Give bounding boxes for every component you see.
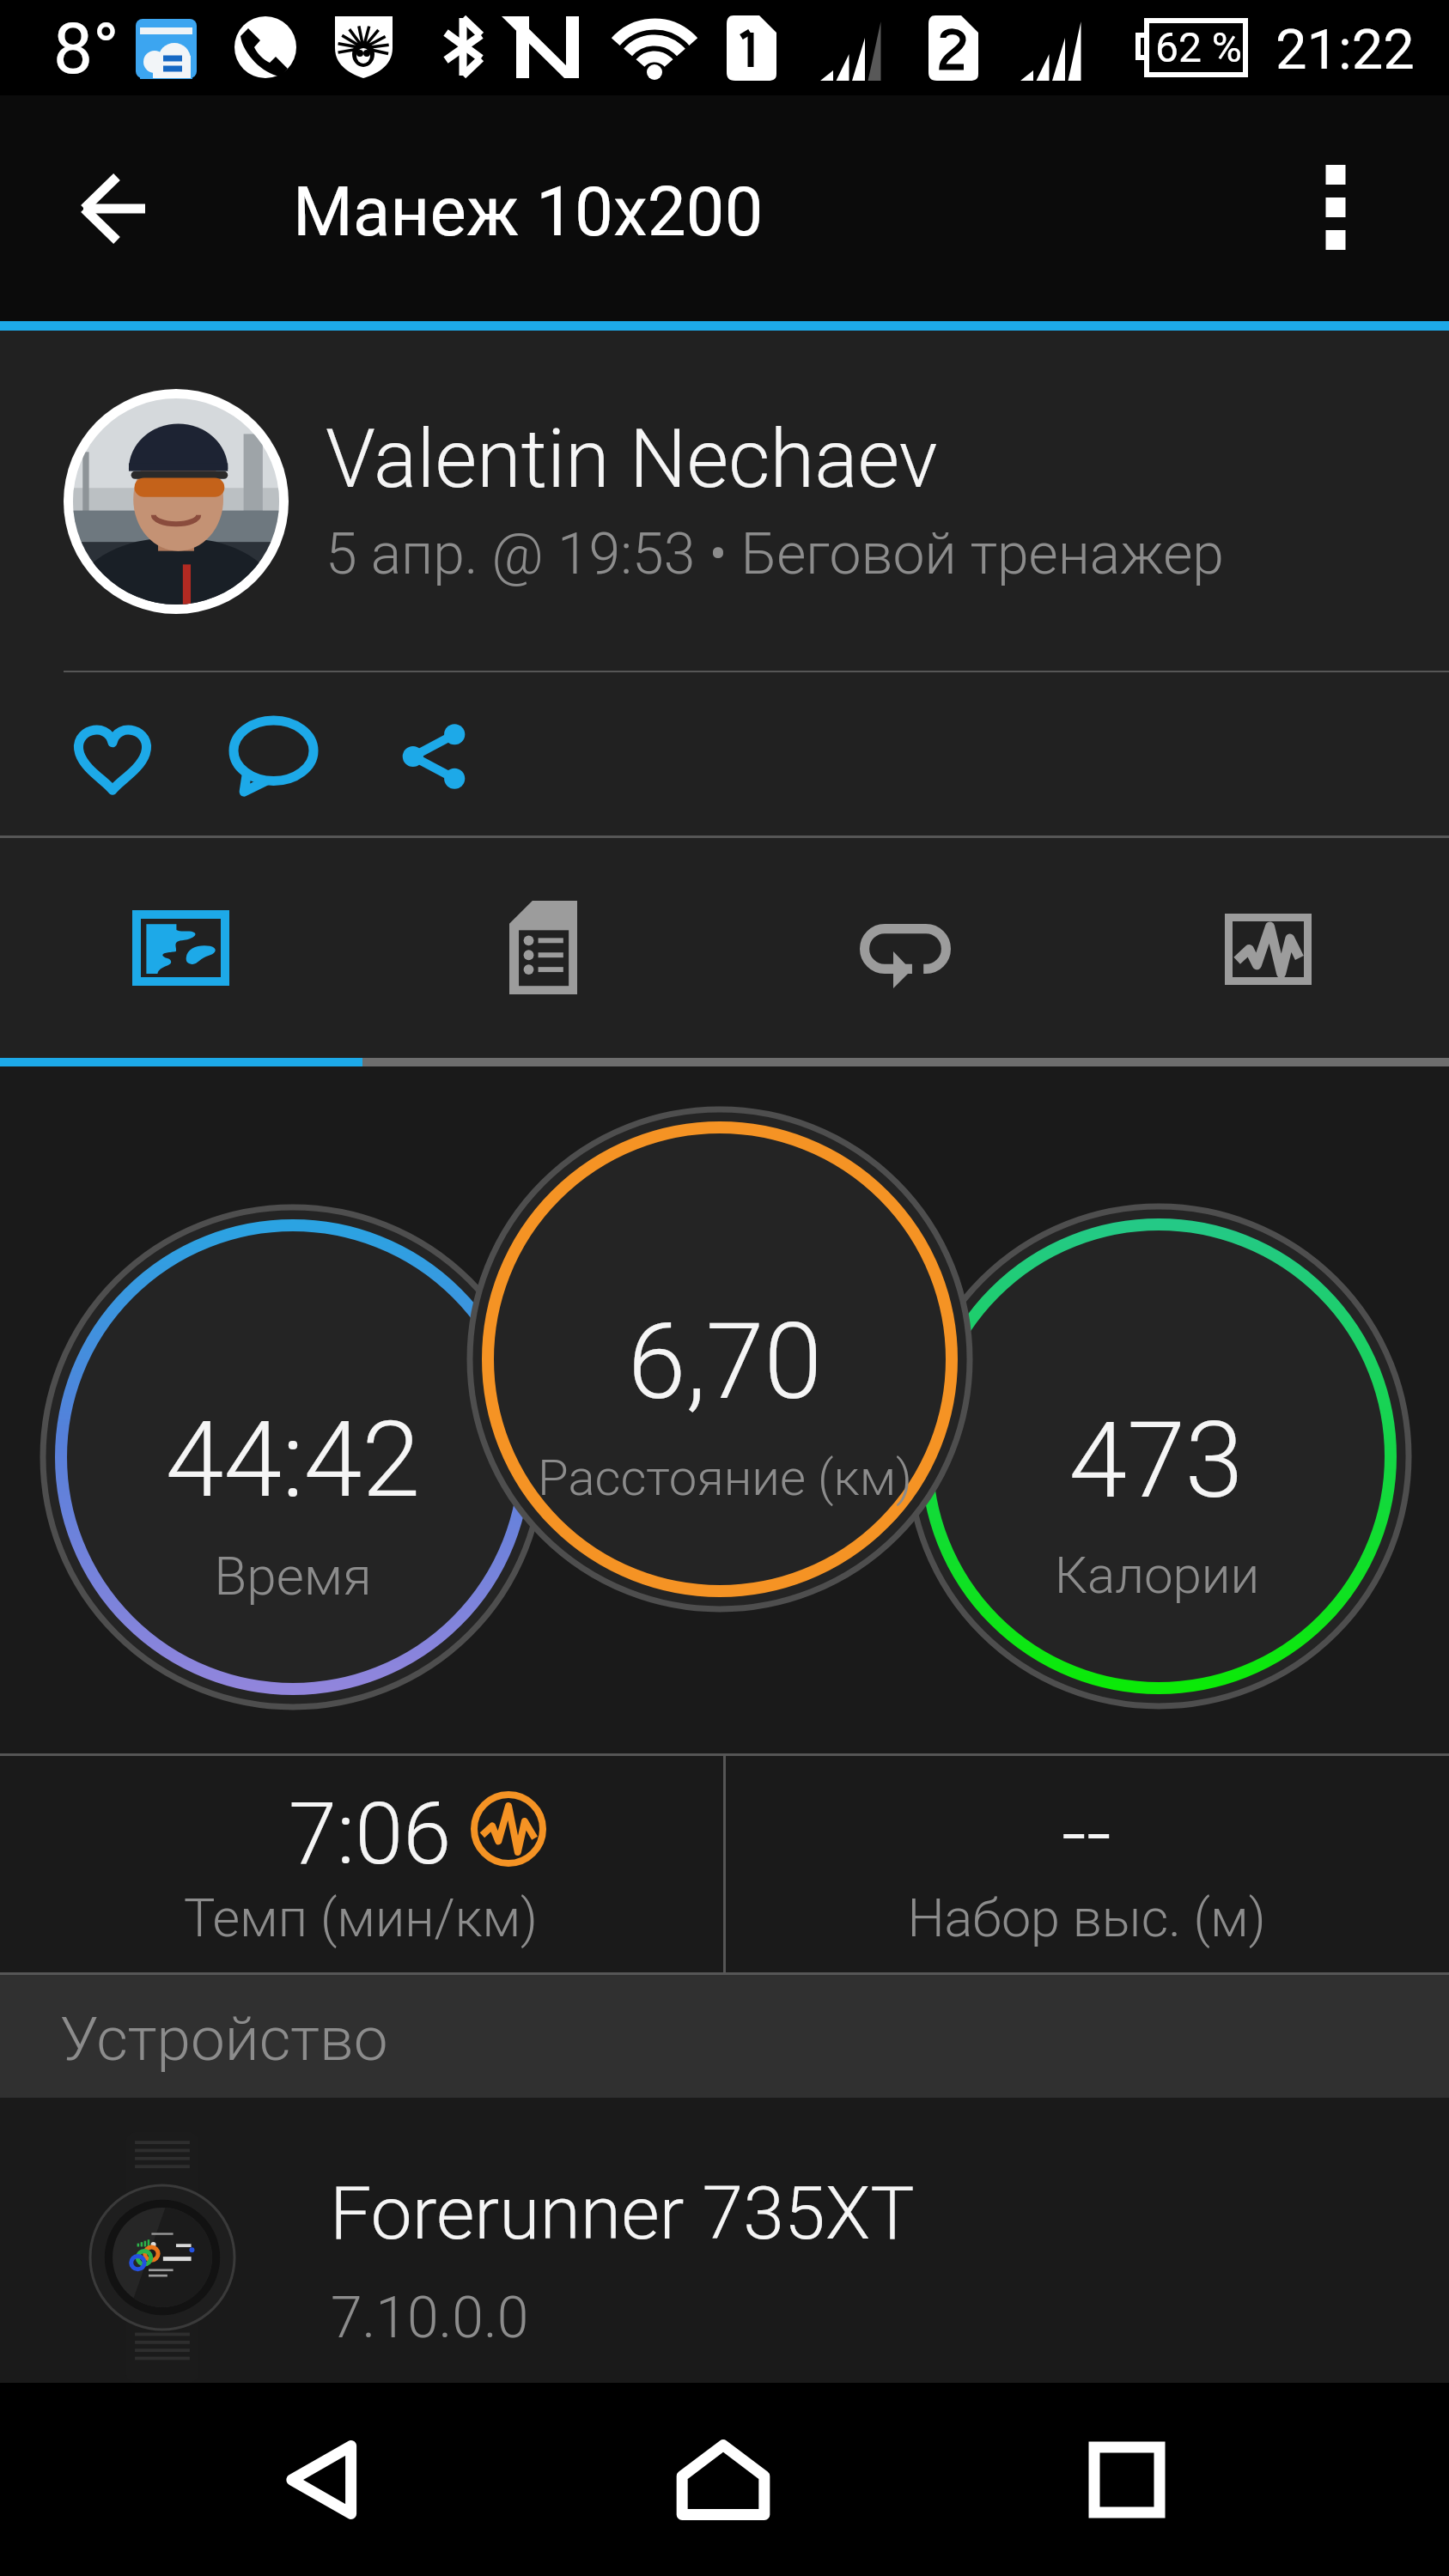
button[interactable]: Share <box>368 691 499 822</box>
staticText: Манеж 10x200 <box>293 172 764 252</box>
staticText: Расстояние (км) <box>510 1449 940 1507</box>
staticText: 7:06 <box>289 1783 452 1884</box>
button[interactable]: Like <box>47 693 178 823</box>
button[interactable]: Back <box>61 149 164 269</box>
staticText: 473 <box>933 1400 1379 1522</box>
button[interactable]: Map <box>0 838 362 1058</box>
staticText: -- <box>829 1783 1344 1884</box>
staticText: Калории <box>934 1545 1380 1605</box>
button[interactable]: Laps <box>724 838 1087 1058</box>
staticText: 44:42 <box>70 1399 516 1522</box>
button[interactable]: Charts <box>1087 838 1449 1058</box>
button[interactable]: Profile photo <box>64 389 289 614</box>
staticText: 7.10.0.0 <box>331 2285 529 2351</box>
staticText: Темп (мин/км) <box>17 1887 704 1948</box>
button[interactable] <box>0 2098 1449 2383</box>
staticText: Forerunner 735XT <box>330 2170 915 2257</box>
staticText: Время <box>70 1545 516 1607</box>
staticText: 5 апр. @ 19:53 • Беговой тренажер <box>326 521 1224 587</box>
button[interactable]: Details <box>362 838 724 1058</box>
button[interactable]: More options <box>1284 152 1387 264</box>
staticText: Устройство <box>60 2003 388 2075</box>
staticText: Valentin Nechaev <box>326 412 938 507</box>
button[interactable]: Home <box>642 2417 805 2543</box>
staticText: Набор выс. (м) <box>743 1887 1430 1948</box>
button[interactable] <box>726 1756 1449 1972</box>
staticText: 62 % <box>1155 23 1243 71</box>
button[interactable]: Back <box>240 2417 404 2543</box>
staticText: 21:22 <box>1275 17 1415 82</box>
button[interactable]: Comment <box>208 691 338 822</box>
button[interactable] <box>0 1756 723 1972</box>
button[interactable]: Recent apps <box>1045 2417 1209 2543</box>
staticText: 8° <box>53 8 119 90</box>
staticText: 6,70 <box>510 1301 940 1424</box>
